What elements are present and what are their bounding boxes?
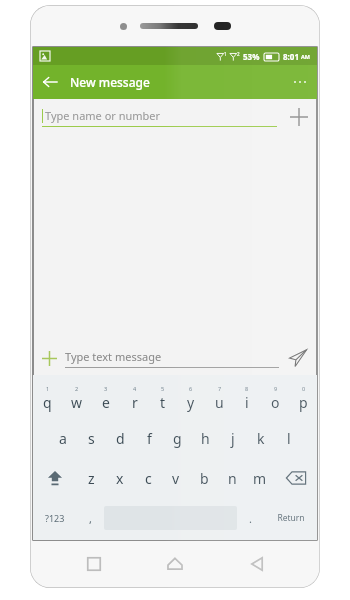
button[interactable]: Add attachment <box>33 342 65 374</box>
staticText: h <box>201 429 210 448</box>
staticText: 2 <box>237 51 240 57</box>
button[interactable]: 6 <box>177 378 205 418</box>
button[interactable]: Backspace <box>274 458 317 498</box>
staticText: q <box>43 393 52 412</box>
button[interactable]: Shift <box>33 458 77 498</box>
staticText: 7 <box>218 385 222 392</box>
staticText: Type text message <box>65 349 162 364</box>
staticText: w <box>71 393 83 412</box>
button[interactable]: 5 <box>149 378 177 418</box>
button[interactable]: Return <box>264 498 317 538</box>
button[interactable]: . <box>237 498 264 538</box>
staticText: d <box>116 429 125 448</box>
button[interactable]: 9 <box>261 378 289 418</box>
staticText: s <box>88 429 95 448</box>
staticText: i <box>245 393 249 412</box>
button[interactable]: g <box>163 418 191 458</box>
staticText: r <box>132 393 138 412</box>
button[interactable]: Home <box>157 546 193 582</box>
button[interactable]: 7 <box>205 378 233 418</box>
staticText: t <box>160 393 166 412</box>
button[interactable]: Add recipient <box>281 99 317 135</box>
staticText: a <box>59 429 67 448</box>
button[interactable]: d <box>106 418 135 458</box>
button[interactable]: 8 <box>233 378 261 418</box>
button[interactable]: j <box>219 418 247 458</box>
button[interactable]: Recent apps <box>76 546 112 582</box>
button[interactable]: 0 <box>289 378 317 418</box>
button[interactable]: Type name or number <box>33 99 317 135</box>
staticText: v <box>172 469 180 488</box>
staticText: 1 <box>224 51 227 57</box>
staticText: 3 <box>104 385 108 392</box>
staticText: x <box>116 469 124 488</box>
button[interactable]: , <box>77 498 104 538</box>
staticText: ?123 <box>45 512 65 524</box>
staticText: AM <box>301 53 310 60</box>
staticText: c <box>145 469 152 488</box>
button[interactable]: Back <box>33 65 67 99</box>
button[interactable]: f <box>135 418 163 458</box>
button[interactable]: Back <box>239 546 275 582</box>
staticText: , <box>89 511 92 526</box>
staticText: g <box>173 429 182 448</box>
staticText: u <box>215 393 224 412</box>
staticText: New message <box>70 74 150 90</box>
staticText: j <box>231 429 235 448</box>
staticText: l <box>287 429 291 448</box>
staticText: 5 <box>161 385 165 392</box>
button[interactable]: Send <box>279 341 317 375</box>
staticText: f <box>147 429 152 448</box>
button[interactable]: c <box>134 458 162 498</box>
button[interactable]: x <box>106 458 134 498</box>
staticText: 53% <box>243 51 260 62</box>
button[interactable]: 3 <box>91 378 120 418</box>
staticText: 8 <box>245 385 249 392</box>
staticText: . <box>249 511 252 526</box>
staticText: p <box>299 393 308 412</box>
staticText: 0 <box>302 385 306 392</box>
staticText: b <box>200 469 209 488</box>
staticText: 6 <box>189 385 193 392</box>
button[interactable]: n <box>218 458 246 498</box>
staticText: k <box>257 429 265 448</box>
staticText: 8:01 <box>283 51 299 62</box>
staticText: Return <box>277 512 305 524</box>
staticText: z <box>88 469 95 488</box>
staticText: e <box>102 393 110 412</box>
staticText: y <box>187 393 195 412</box>
button[interactable]: m <box>246 458 274 498</box>
button[interactable]: More options <box>283 65 317 99</box>
button[interactable]: 2 <box>62 378 91 418</box>
button[interactable]: b <box>190 458 218 498</box>
staticText: 9 <box>274 385 278 392</box>
button[interactable]: k <box>247 418 275 458</box>
button[interactable]: a <box>48 418 77 458</box>
staticText: 4 <box>133 385 137 392</box>
button[interactable]: l <box>275 418 303 458</box>
staticText: m <box>253 469 267 488</box>
button[interactable]: s <box>77 418 106 458</box>
button[interactable]: v <box>162 458 190 498</box>
button[interactable]: Type text message <box>65 349 279 368</box>
button[interactable]: ?123 <box>33 498 77 538</box>
staticText: Type name or number <box>45 108 161 123</box>
button[interactable]: h <box>191 418 219 458</box>
staticText: 2 <box>75 385 79 392</box>
staticText: 1 <box>46 385 50 392</box>
button[interactable]: z <box>77 458 106 498</box>
staticText: o <box>271 393 280 412</box>
button[interactable]: 4 <box>120 378 149 418</box>
button[interactable]: 1 <box>33 378 62 418</box>
staticText: n <box>228 469 237 488</box>
